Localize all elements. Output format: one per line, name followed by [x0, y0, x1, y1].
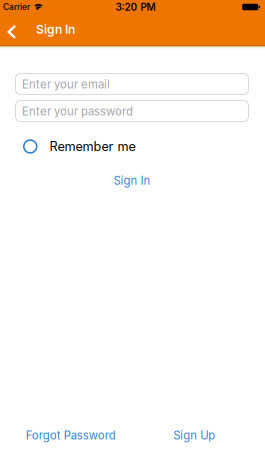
- button[interactable]: Back: [0, 14, 26, 45]
- staticText: 3:20 PM: [115, 1, 155, 13]
- button[interactable]: Enter your password: [15, 100, 249, 122]
- button[interactable]: Enter your email: [15, 73, 249, 95]
- button[interactable]: Sign Up: [132, 429, 256, 442]
- staticText: Remember me: [49, 139, 135, 154]
- button[interactable]: Sign In: [113, 174, 150, 187]
- button[interactable]: Forgot Password: [9, 429, 132, 442]
- button[interactable]: Remember me: [15, 139, 135, 154]
- staticText: Forgot Password: [26, 429, 116, 442]
- staticText: Sign In: [113, 174, 150, 187]
- staticText: Sign Up: [173, 429, 215, 442]
- staticText: Enter your password: [22, 105, 133, 118]
- staticText: Enter your email: [22, 78, 110, 91]
- staticText: Carrier: [3, 2, 30, 12]
- staticText: Sign In: [36, 22, 75, 37]
